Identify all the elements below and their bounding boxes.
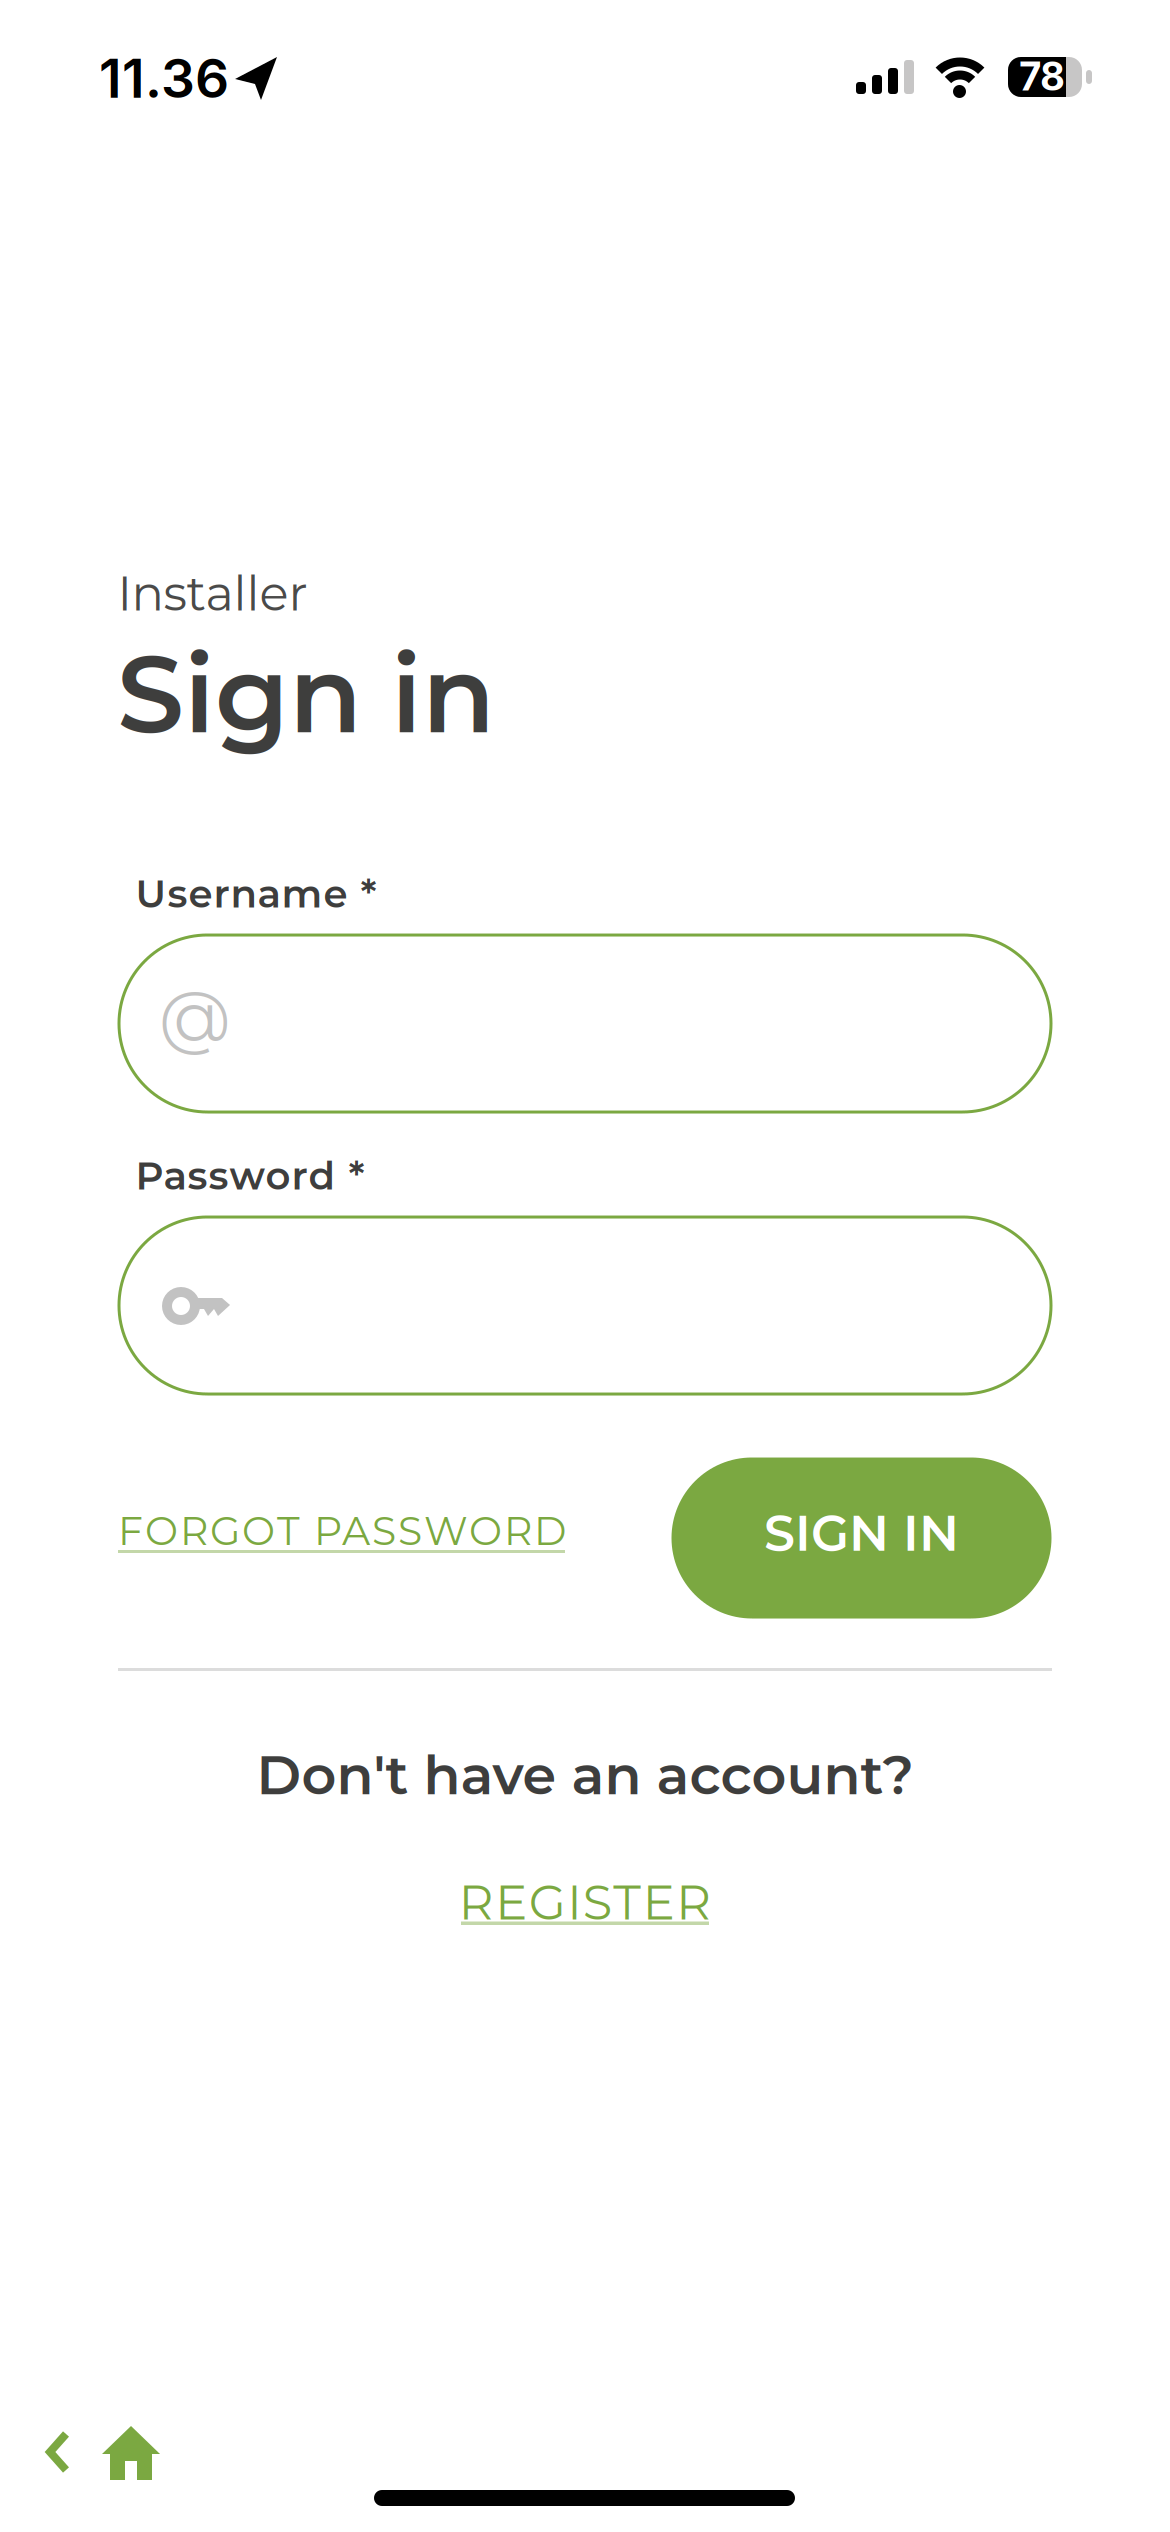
button[interactable]: REGISTER [459, 1873, 711, 1931]
button[interactable]: Password [119, 1217, 1051, 1394]
staticText: SIGN IN [764, 1503, 959, 1563]
button[interactable]: Username [119, 935, 1051, 1112]
staticText: Sign in [117, 629, 495, 759]
staticText: 78 [1019, 53, 1064, 100]
staticText: Password * [135, 1152, 364, 1199]
staticText: Don't have an account? [256, 1742, 913, 1808]
staticText: Installer [117, 564, 307, 622]
staticText: @ [159, 974, 231, 1058]
staticText: Username * [135, 870, 376, 917]
staticText: 11.36 [99, 46, 229, 110]
button[interactable]: SIGN IN [671, 1457, 1051, 1618]
staticText: REGISTER [459, 1873, 711, 1931]
staticText: FORGOT PASSWORD [118, 1507, 566, 1555]
button[interactable]: Back [50, 2434, 70, 2470]
button[interactable]: FORGOT PASSWORD [118, 1507, 566, 1555]
button[interactable]: Home [102, 2426, 160, 2480]
